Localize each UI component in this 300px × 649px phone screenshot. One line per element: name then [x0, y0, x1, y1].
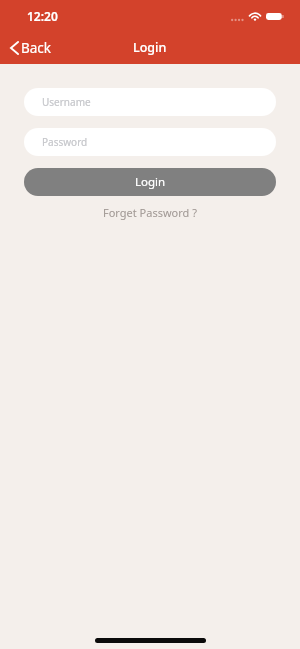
button[interactable]: Username [24, 88, 276, 116]
button[interactable]: Password [24, 128, 276, 156]
button[interactable]: Login [24, 168, 276, 196]
other: Wi-Fi [248, 12, 262, 26]
staticText: Username [42, 95, 91, 109]
staticText: Back [21, 39, 52, 57]
staticText: Login [133, 39, 167, 56]
staticText: Password [42, 135, 88, 149]
button[interactable]: Back [0, 38, 60, 58]
other: Back [10, 41, 19, 55]
other: Battery [266, 13, 284, 20]
staticText: Login [135, 174, 166, 190]
staticText: 12:20 [27, 8, 58, 24]
button[interactable]: Forget Password ? [97, 203, 203, 222]
